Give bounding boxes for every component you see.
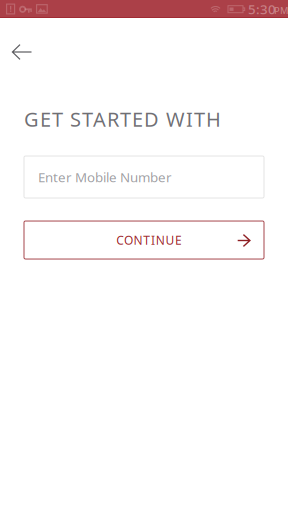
staticText: GET STARTED WITH	[24, 106, 221, 132]
staticText: 5:30	[248, 0, 276, 18]
staticText: Enter Mobile Number	[38, 168, 172, 186]
staticText: PM	[274, 4, 288, 17]
button[interactable]: Back	[0, 32, 44, 72]
staticText: CONTINUE	[116, 232, 184, 248]
button[interactable]: CONTINUE	[24, 221, 264, 259]
